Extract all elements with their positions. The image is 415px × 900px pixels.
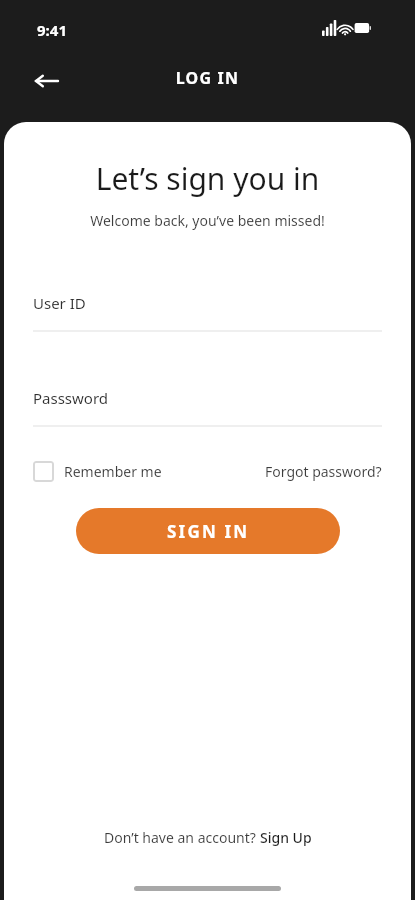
staticText: User ID bbox=[33, 293, 86, 313]
button[interactable]: Remember me bbox=[33, 461, 162, 482]
button[interactable]: SIGN IN bbox=[76, 508, 340, 554]
staticText: Remember me bbox=[64, 462, 162, 481]
staticText: Passsword bbox=[33, 388, 109, 408]
staticText: Welcome back, you’ve been missed! bbox=[4, 211, 411, 230]
button[interactable]: Don’t have an account? bbox=[4, 828, 411, 847]
button[interactable]: Forgot password? bbox=[265, 462, 382, 481]
button[interactable]: User ID bbox=[33, 293, 382, 332]
staticText: 9:41 bbox=[37, 20, 67, 40]
button[interactable]: Passsword bbox=[33, 388, 382, 427]
button[interactable]: Back bbox=[26, 60, 68, 102]
staticText: Forgot password? bbox=[265, 462, 382, 481]
staticText: Don’t have an account? bbox=[104, 828, 260, 847]
staticText: LOG IN bbox=[0, 67, 415, 89]
staticText: SIGN IN bbox=[167, 520, 250, 543]
staticText: Let’s sign you in bbox=[4, 158, 411, 199]
staticText: Sign Up bbox=[260, 828, 312, 847]
